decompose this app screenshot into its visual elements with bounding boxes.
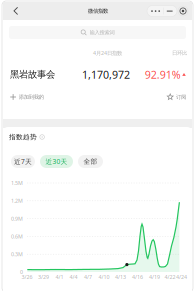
staticText: 3/29 bbox=[38, 273, 49, 281]
staticText: 4/16 bbox=[132, 273, 143, 281]
staticText: 1,170,972 bbox=[82, 67, 130, 82]
staticText: 0.6M bbox=[11, 233, 23, 240]
staticText: 4/13 bbox=[115, 273, 126, 281]
staticText: 订阅 bbox=[176, 94, 186, 100]
staticText: 微信指数 bbox=[88, 8, 108, 14]
staticText: 1.2M bbox=[11, 197, 23, 204]
button[interactable]: Close bbox=[176, 2, 190, 20]
staticText: 1.5M bbox=[11, 179, 23, 187]
button[interactable]: 订阅 bbox=[160, 91, 186, 103]
staticText: 近30天 bbox=[45, 157, 67, 166]
staticText: 4月24日指数 bbox=[93, 49, 122, 57]
button[interactable]: Menu bbox=[147, 2, 177, 20]
button[interactable]: Back bbox=[6, 2, 26, 20]
button[interactable]: 近7天 bbox=[11, 155, 35, 168]
staticText: 92.91% bbox=[145, 67, 181, 82]
staticText: 4/1 bbox=[55, 273, 63, 281]
staticText: 近7天 bbox=[14, 157, 32, 166]
staticText: 黑岩故事会 bbox=[10, 69, 55, 80]
staticText: 3/26 bbox=[21, 273, 32, 281]
staticText: 0.3M bbox=[11, 251, 23, 258]
staticText: 4/19 bbox=[149, 273, 160, 281]
staticText: 日环比 bbox=[172, 50, 187, 56]
button[interactable]: 近30天 bbox=[40, 155, 73, 168]
button[interactable]: 全部 bbox=[78, 155, 103, 168]
staticText: 4/10 bbox=[98, 273, 109, 281]
staticText: 4/22 bbox=[164, 273, 175, 281]
staticText: 0 bbox=[20, 268, 23, 276]
staticText: 4/24 bbox=[176, 273, 187, 281]
staticText: 0.9M bbox=[11, 215, 23, 222]
staticText: 全部 bbox=[83, 157, 97, 166]
staticText: 4/4 bbox=[69, 273, 77, 281]
staticText: 添加到我的 bbox=[19, 94, 44, 100]
staticText: 指数趋势 bbox=[9, 133, 37, 141]
button[interactable]: 输入搜索词 bbox=[9, 26, 186, 39]
staticText: 输入搜索词 bbox=[89, 29, 114, 36]
button[interactable]: 添加到我的 bbox=[10, 91, 58, 103]
staticText: 4/7 bbox=[84, 273, 92, 281]
